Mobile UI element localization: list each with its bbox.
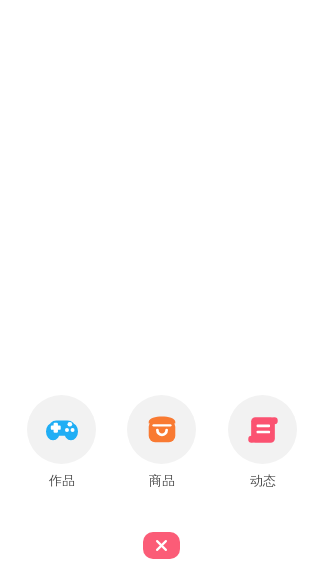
button[interactable]: 动态	[220, 395, 305, 488]
staticText: 动态	[250, 472, 276, 488]
button[interactable]: 商品	[119, 395, 204, 488]
staticText: 商品	[149, 472, 175, 488]
staticText: 作品	[49, 472, 75, 488]
button[interactable]: 关闭	[143, 532, 180, 559]
button[interactable]: 作品	[19, 395, 104, 488]
